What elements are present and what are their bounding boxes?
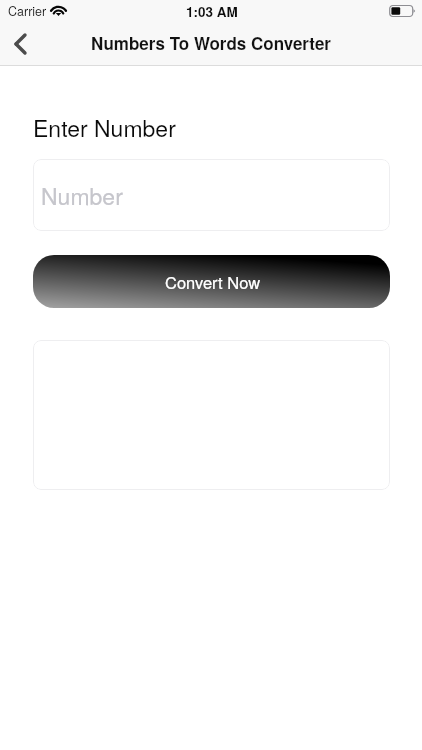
staticText: Number: [41, 179, 123, 212]
staticText: Numbers To Words Converter: [91, 31, 331, 55]
staticText: Carrier: [8, 2, 47, 20]
button[interactable]: Back: [0, 24, 40, 64]
button[interactable]: Convert Now: [33, 255, 390, 308]
button[interactable]: Number: [33, 159, 390, 231]
staticText: 1:03 AM: [186, 2, 238, 21]
staticText: Enter Number: [33, 111, 176, 144]
staticText: Convert Now: [165, 270, 261, 294]
